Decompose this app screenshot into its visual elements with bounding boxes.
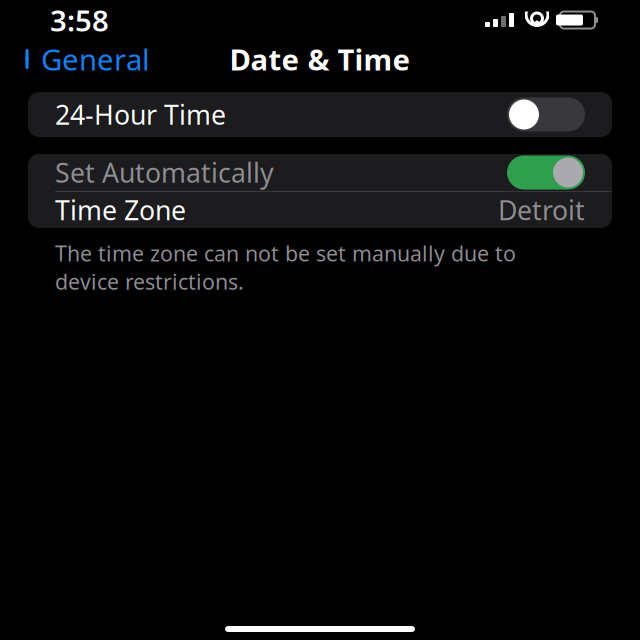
staticText: The time zone can not be set manually du…	[55, 239, 516, 296]
button[interactable]: Set Automatically, on	[507, 155, 585, 189]
staticText: Detroit	[498, 192, 585, 228]
button[interactable]: Time Zone	[28, 192, 612, 228]
staticText: General	[41, 39, 150, 78]
staticText: 24-Hour Time	[55, 97, 226, 132]
button[interactable]: General	[8, 41, 164, 77]
staticText: 3:58	[50, 0, 109, 39]
staticText: Set Automatically	[55, 155, 274, 190]
staticText: Date & Time	[229, 39, 410, 78]
button[interactable]: 24-Hour Time, off	[507, 97, 585, 131]
staticText: Time Zone	[55, 192, 186, 228]
